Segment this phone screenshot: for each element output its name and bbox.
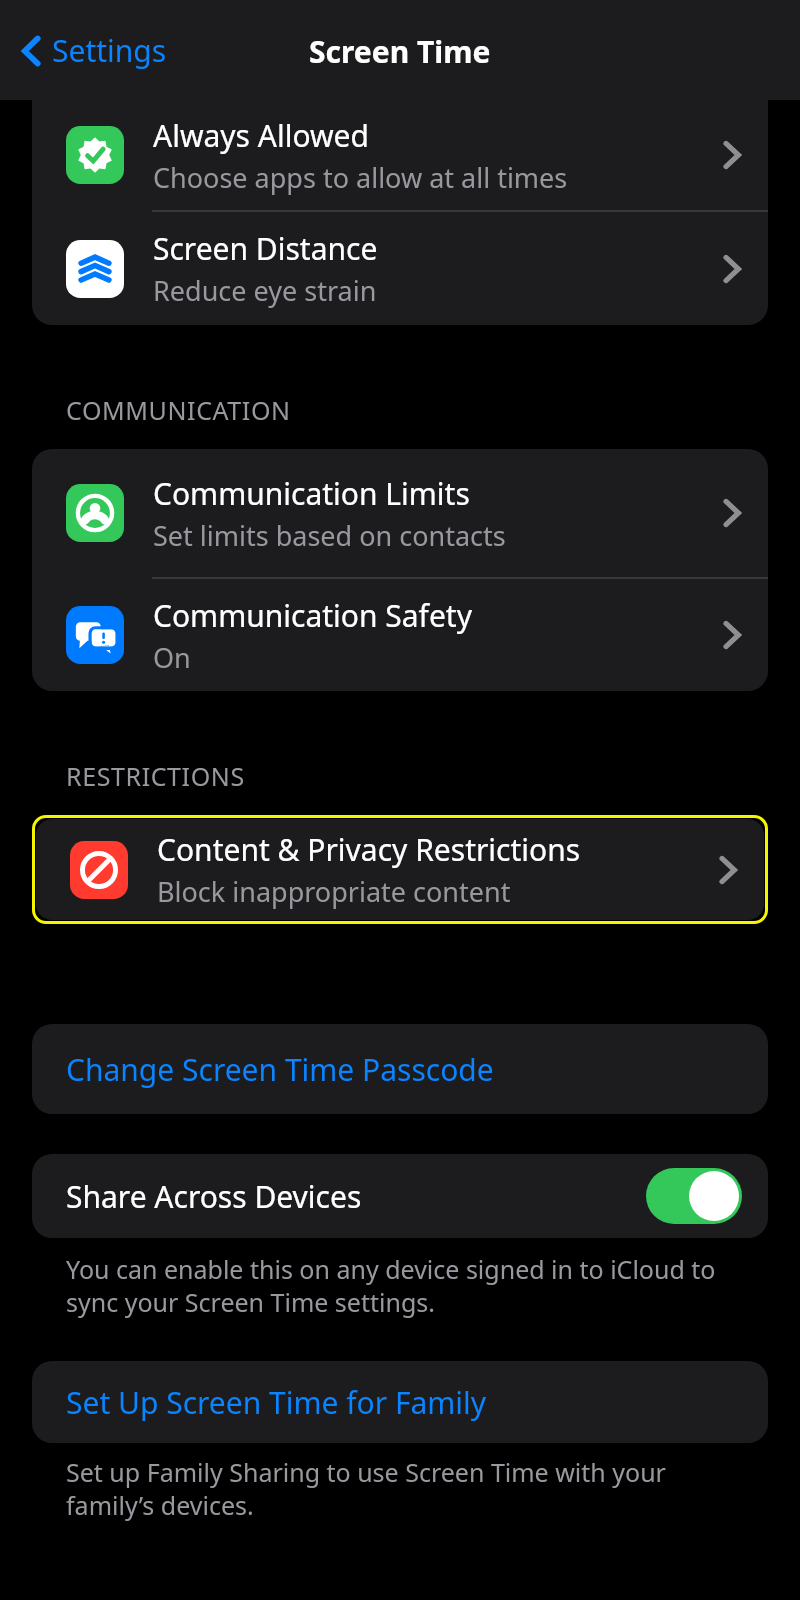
staticText: On	[153, 639, 191, 676]
staticText: Set limits based on contacts	[153, 517, 506, 554]
staticText: Communication Limits	[153, 473, 470, 514]
staticText: Reduce eye strain	[153, 272, 377, 309]
staticText: You can enable this on any device signed…	[66, 1252, 740, 1319]
staticText: Settings	[52, 30, 167, 71]
staticText: Screen Time	[309, 31, 491, 72]
staticText: Block inappropriate content	[157, 873, 511, 910]
staticText: Choose apps to allow at all times	[153, 159, 568, 196]
button[interactable]: Set Up Screen Time for Family	[32, 1361, 768, 1443]
button[interactable]: Change Screen Time Passcode	[32, 1024, 768, 1114]
staticText: Content & Privacy Restrictions	[157, 829, 581, 870]
staticText: Communication Safety	[153, 595, 472, 636]
staticText: Change Screen Time Passcode	[66, 1049, 494, 1090]
staticText: Set up Family Sharing to use Screen Time…	[66, 1455, 740, 1522]
staticText: COMMUNICATION	[66, 393, 291, 427]
button[interactable]: Always Allowed	[32, 100, 768, 210]
button[interactable]: Screen Distance	[32, 212, 768, 325]
staticText: Set Up Screen Time for Family	[66, 1382, 487, 1423]
button[interactable]: Share Across Devices	[32, 1154, 768, 1238]
button[interactable]: Settings	[10, 24, 175, 77]
button[interactable]: Communication Safety	[32, 579, 768, 691]
staticText: Always Allowed	[153, 115, 369, 156]
button[interactable]: Content & Privacy Restrictions	[36, 819, 764, 920]
button[interactable]: Share Across Devices toggle, on	[646, 1168, 742, 1224]
staticText: RESTRICTIONS	[66, 759, 245, 793]
staticText: Screen Distance	[153, 228, 378, 269]
button[interactable]: Communication Limits	[32, 449, 768, 577]
staticText: Share Across Devices	[66, 1176, 362, 1217]
